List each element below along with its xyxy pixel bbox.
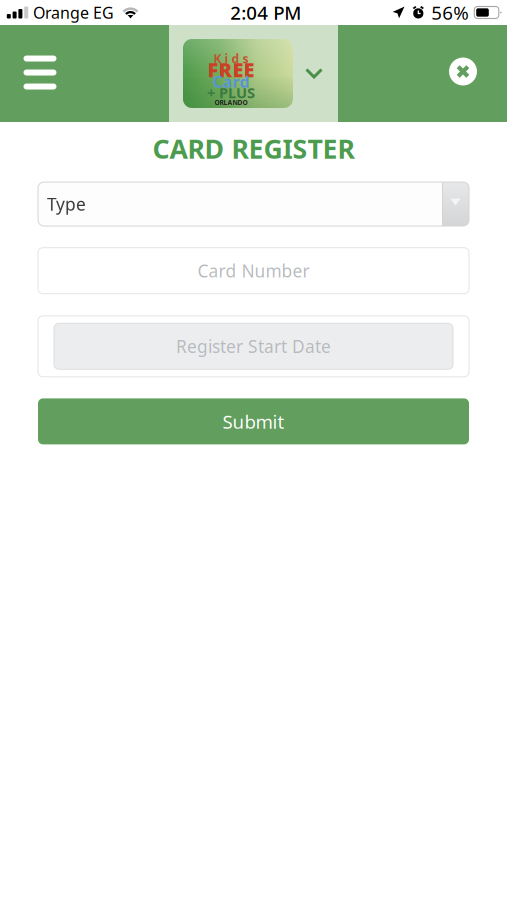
staticText: CARD REGISTER (152, 131, 354, 166)
staticText: FREE (207, 56, 254, 83)
staticText: Submit (222, 409, 284, 434)
staticText: + PLUS (207, 83, 255, 102)
staticText: 56% (431, 0, 469, 25)
staticText: Orange EG (33, 2, 114, 23)
staticText: Card Number (197, 259, 309, 282)
staticText: Type (47, 192, 86, 215)
button[interactable]: Card Number (38, 248, 469, 294)
button[interactable]: Select card (169, 25, 338, 122)
button[interactable]: Type (38, 182, 469, 226)
button[interactable]: Close (427, 25, 507, 122)
staticText: Card (212, 71, 249, 92)
button[interactable]: Submit (38, 398, 469, 444)
staticText: Register Start Date (176, 335, 331, 358)
staticText: ORLANDO (214, 98, 247, 107)
staticText: K i d s (213, 50, 248, 66)
staticText: 2:04 PM (230, 0, 301, 25)
button[interactable]: Register Start Date (38, 316, 469, 377)
button[interactable]: Menu (0, 25, 80, 122)
